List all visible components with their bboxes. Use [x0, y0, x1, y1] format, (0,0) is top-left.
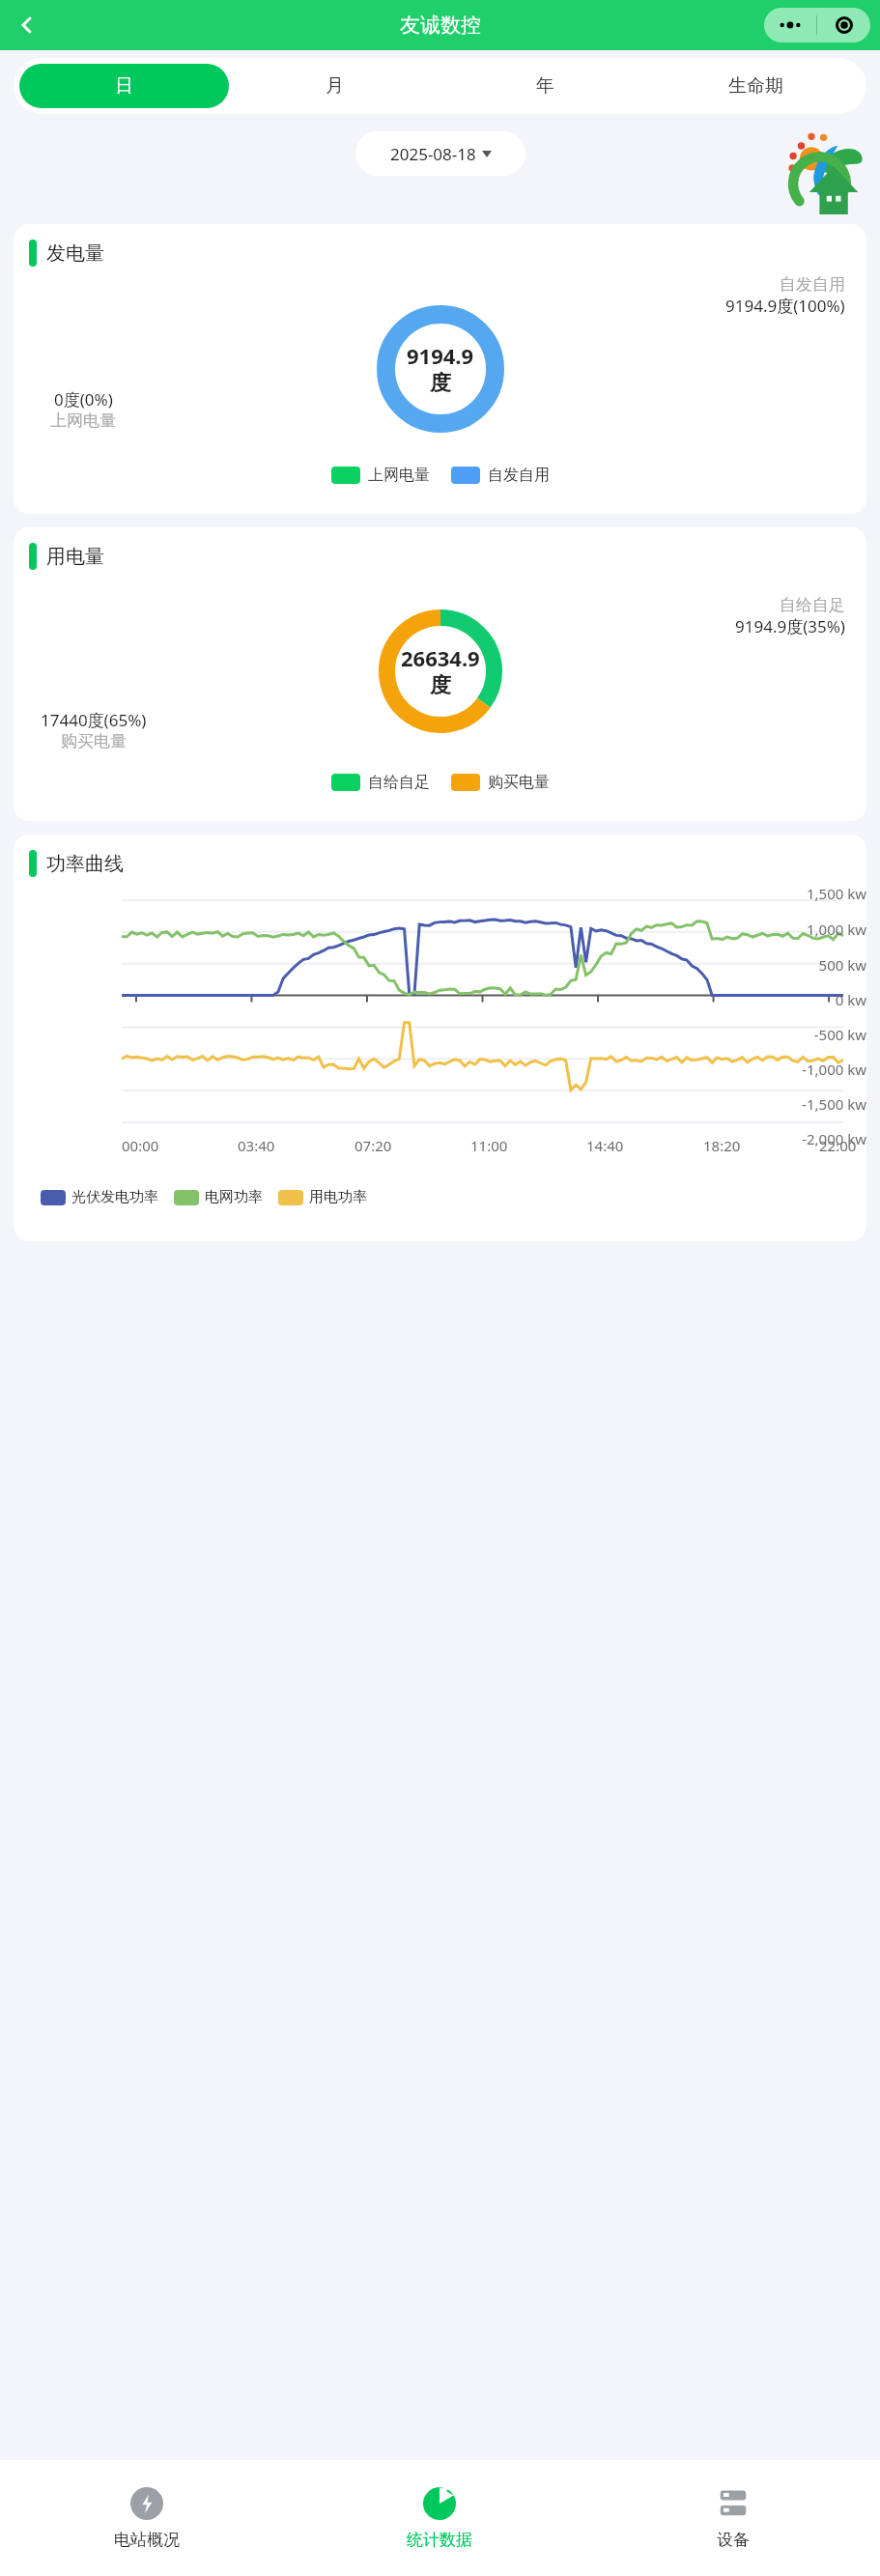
staticText: 26634.9	[401, 643, 480, 672]
staticText: 03:40	[238, 1136, 275, 1155]
staticText: 自发自用	[780, 274, 845, 295]
button[interactable]: 2025-08-18	[355, 131, 525, 176]
staticText: 电站概况	[114, 2530, 180, 2550]
staticText: 日	[115, 74, 133, 98]
button[interactable]: 年	[440, 64, 650, 108]
staticText: 月	[326, 74, 344, 98]
button[interactable]: Back	[8, 6, 46, 44]
staticText: 生命期	[728, 74, 783, 98]
staticText: 0度(0%)	[54, 388, 113, 410]
staticText: 发电量	[46, 241, 104, 266]
staticText: 1,500 kw	[764, 884, 866, 903]
staticText: 度	[430, 672, 451, 699]
staticText: -500 kw	[764, 1025, 866, 1044]
button[interactable]: 设备	[586, 2460, 880, 2576]
staticText: 上网电量	[50, 410, 116, 431]
staticText: 22:00	[819, 1136, 857, 1155]
staticText: 电网功率	[205, 1188, 263, 1206]
staticText: 功率曲线	[46, 852, 124, 876]
staticText: 2025-08-18	[390, 143, 476, 165]
staticText: 自给自足	[368, 773, 430, 792]
staticText: 9194.9	[407, 341, 474, 370]
button[interactable]: Close	[817, 8, 870, 42]
button[interactable]: 月	[229, 64, 440, 108]
button[interactable]: 发电量	[14, 224, 866, 514]
staticText: 用电功率	[309, 1188, 367, 1206]
staticText: 500 kw	[764, 955, 866, 975]
staticText: 统计数据	[407, 2530, 472, 2550]
staticText: 1,000 kw	[764, 920, 866, 939]
staticText: 光伏发电功率	[71, 1188, 158, 1206]
staticText: 14:40	[586, 1136, 624, 1155]
button[interactable]: 统计数据	[293, 2460, 586, 2576]
button[interactable]: More	[764, 8, 816, 42]
staticText: -2,000 kw	[764, 1129, 866, 1148]
staticText: 17440度(65%)	[41, 709, 147, 731]
button[interactable]: 日	[19, 64, 229, 108]
staticText: -1,500 kw	[764, 1094, 866, 1114]
staticText: 自给自足	[780, 595, 845, 615]
staticText: 9194.9度(100%)	[725, 295, 845, 317]
staticText: 0 kw	[764, 990, 866, 1009]
staticText: -1,000 kw	[764, 1060, 866, 1079]
staticText: 用电量	[46, 545, 104, 569]
button[interactable]: 用电量	[14, 527, 866, 821]
staticText: 设备	[717, 2530, 750, 2550]
staticText: 度	[430, 370, 451, 397]
staticText: 上网电量	[368, 466, 430, 485]
staticText: 自发自用	[488, 466, 550, 485]
staticText: 11:00	[470, 1136, 508, 1155]
button[interactable]: 电站概况	[0, 2460, 293, 2576]
staticText: 友诚数控	[400, 13, 481, 38]
staticText: 年	[536, 74, 554, 98]
staticText: 购买电量	[61, 731, 127, 751]
button[interactable]: 功率曲线	[14, 835, 866, 1241]
staticText: 00:00	[122, 1136, 159, 1155]
staticText: 18:20	[703, 1136, 741, 1155]
button[interactable]: 生命期	[650, 64, 861, 108]
staticText: 07:20	[355, 1136, 392, 1155]
staticText: 9194.9度(35%)	[735, 615, 845, 637]
staticText: 购买电量	[488, 773, 550, 792]
